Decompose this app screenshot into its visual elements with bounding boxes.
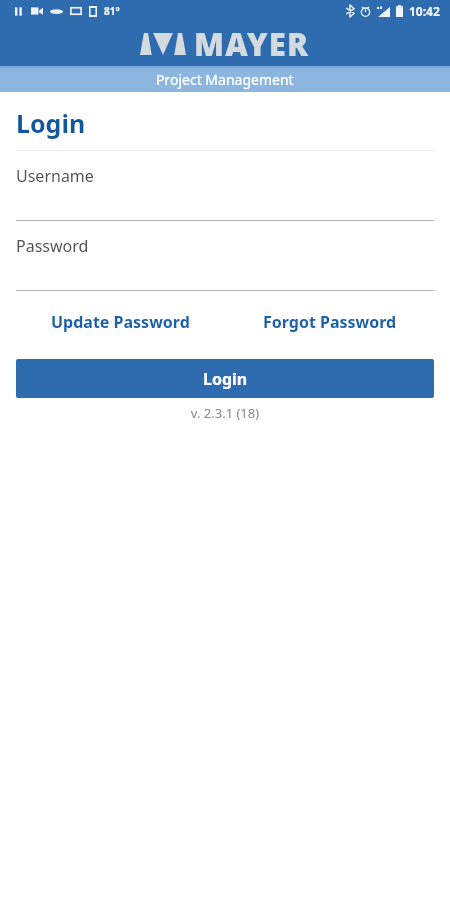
button[interactable]: Forgot Password	[225, 301, 434, 343]
button[interactable]: Username	[16, 165, 434, 221]
button[interactable]: Login	[16, 359, 434, 398]
staticText: Forgot Password	[263, 311, 397, 333]
button[interactable]: Password	[16, 235, 434, 291]
staticText: Password	[16, 235, 89, 257]
staticText: MAYER	[194, 23, 310, 65]
staticText: 81°	[104, 4, 120, 18]
staticText: Login	[203, 368, 248, 390]
staticText: Username	[16, 165, 94, 187]
button[interactable]: Update Password	[16, 301, 225, 343]
staticText: 10:42	[409, 3, 440, 19]
staticText: v. 2.3.1 (18)	[0, 404, 450, 422]
staticText: Login	[16, 106, 86, 140]
staticText: Project Management	[156, 70, 294, 89]
staticText: Update Password	[51, 311, 190, 333]
